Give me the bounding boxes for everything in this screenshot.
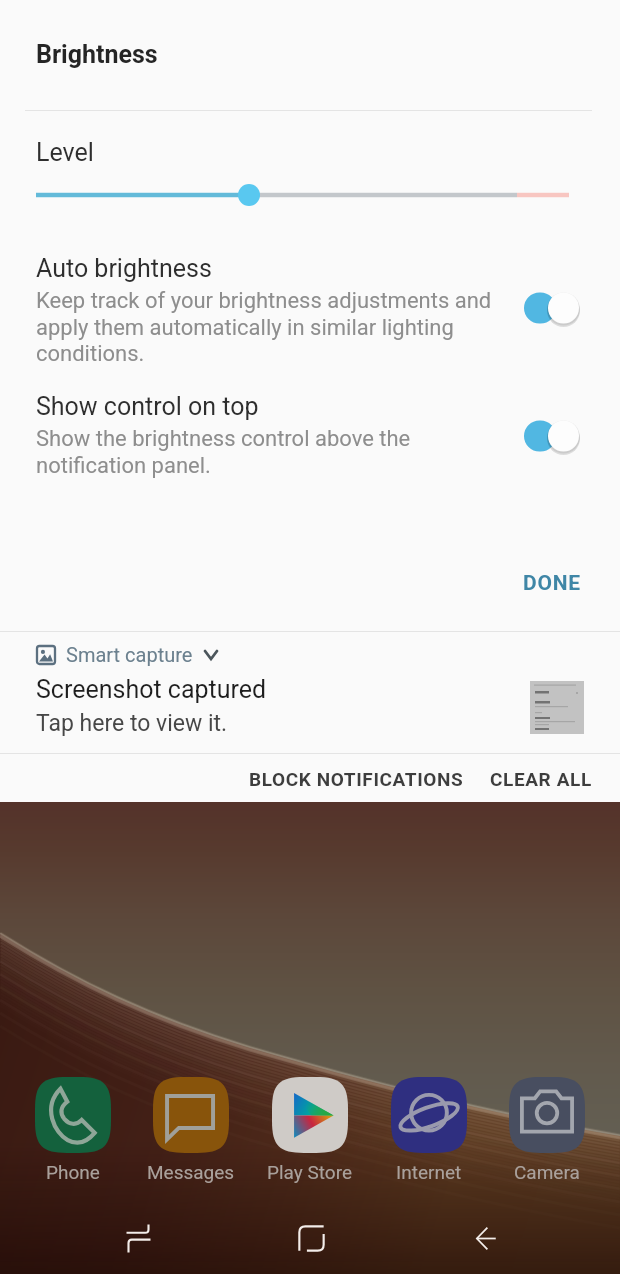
staticText: BLOCK NOTIFICATIONS bbox=[249, 768, 464, 788]
staticText: CLEAR ALL bbox=[490, 768, 592, 788]
staticText: Smart capture bbox=[66, 643, 193, 666]
button[interactable]: Home bbox=[251, 1203, 371, 1273]
button[interactable]: Camera bbox=[487, 1077, 606, 1183]
staticText: Show the brightness control above the no… bbox=[36, 426, 498, 478]
staticText: Auto brightness bbox=[36, 254, 212, 283]
staticText: Brightness bbox=[36, 40, 158, 69]
button[interactable]: Toggle on bbox=[524, 416, 588, 456]
button[interactable]: Smart capture bbox=[0, 632, 620, 753]
button[interactable]: Messages bbox=[131, 1077, 250, 1183]
button[interactable]: BLOCK NOTIFICATIONS bbox=[229, 754, 484, 802]
staticText: Screenshot captured bbox=[36, 675, 267, 704]
staticText: Camera bbox=[514, 1161, 580, 1183]
staticText: Play Store bbox=[267, 1161, 352, 1183]
button[interactable]: DONE bbox=[498, 553, 606, 614]
button[interactable]: Recents bbox=[78, 1203, 198, 1273]
staticText: Tap here to view it. bbox=[36, 710, 228, 737]
staticText: Phone bbox=[46, 1161, 100, 1183]
button[interactable]: Toggle on bbox=[524, 288, 588, 328]
button[interactable]: Show control on top bbox=[0, 386, 620, 516]
staticText: DONE bbox=[523, 571, 581, 596]
button[interactable] bbox=[0, 170, 620, 218]
button[interactable]: Back bbox=[425, 1203, 545, 1273]
staticText: Keep track of your brightness adjustment… bbox=[36, 288, 498, 366]
staticText: Internet bbox=[396, 1161, 462, 1183]
button[interactable]: Phone bbox=[13, 1077, 132, 1183]
button[interactable]: CLEAR ALL bbox=[470, 754, 612, 802]
staticText: Level bbox=[36, 138, 94, 167]
button[interactable]: Play Store bbox=[250, 1077, 369, 1183]
staticText: Messages bbox=[147, 1161, 235, 1183]
staticText: Show control on top bbox=[36, 392, 259, 421]
button[interactable]: Internet bbox=[369, 1077, 488, 1183]
button[interactable]: Auto brightness bbox=[0, 248, 620, 378]
